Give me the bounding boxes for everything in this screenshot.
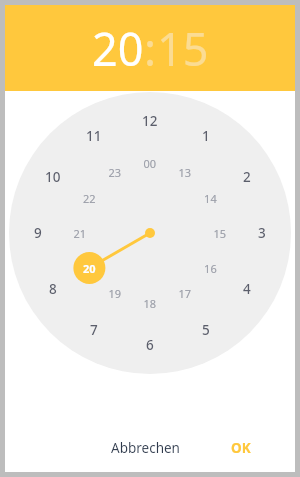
button[interactable]: OK [225, 433, 257, 463]
button[interactable]: Abbrechen [105, 433, 186, 463]
button[interactable]: 15 [157, 18, 209, 79]
staticText: OK [231, 439, 251, 457]
button[interactable]: 20 [92, 18, 144, 79]
staticText: 15 [157, 18, 209, 79]
staticText: 20 [92, 18, 144, 79]
staticText: Abbrechen [111, 439, 180, 457]
button[interactable]: Clock face, hour 20 selected [5, 91, 295, 397]
staticText: : [144, 18, 157, 79]
